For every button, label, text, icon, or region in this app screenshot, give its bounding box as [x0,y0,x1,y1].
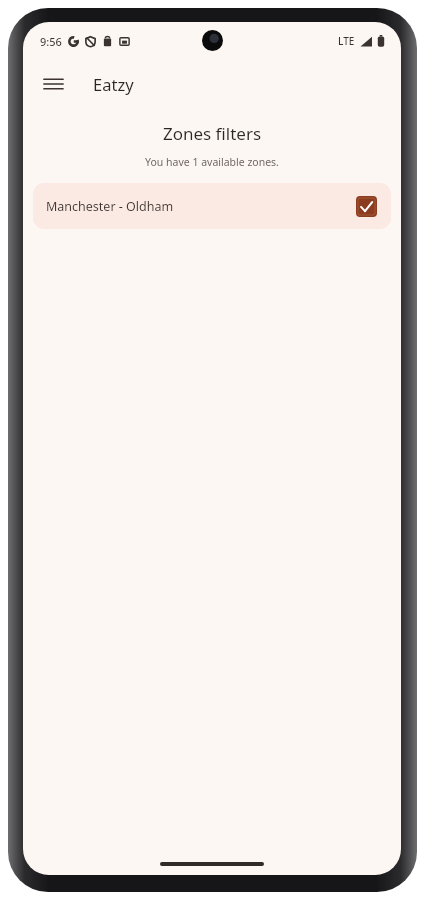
button[interactable]: Open navigation menu [31,62,75,106]
staticText: Manchester - Oldham [46,198,356,215]
staticText: 9:56 [40,34,62,49]
staticText: Zones filters [23,122,401,145]
staticText: You have 1 available zones. [23,155,401,169]
button[interactable]: Manchester - Oldham [33,183,391,229]
staticText: Eatzy [93,73,134,95]
staticText: LTE [338,34,355,48]
